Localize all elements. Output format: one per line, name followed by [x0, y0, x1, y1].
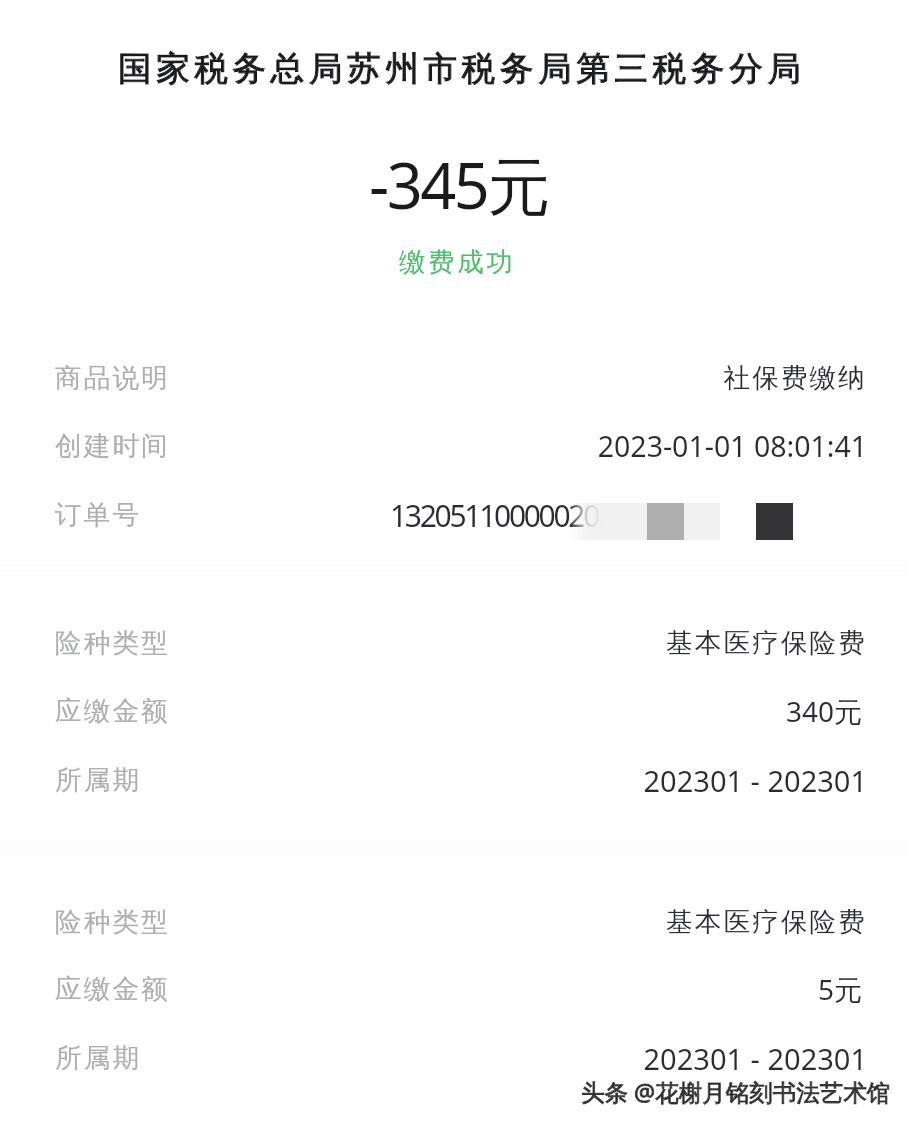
button[interactable]: 险种类型	[0, 893, 908, 951]
staticText: 132051100000203456	[390, 495, 658, 536]
button[interactable]: 所属期	[0, 751, 908, 809]
staticText: 基本医疗保险费	[666, 905, 867, 939]
staticText: 340元	[785, 692, 862, 730]
staticText: 202301 - 202301	[643, 1039, 867, 1078]
staticText: 头条 @花榭月铭刻书法艺术馆	[581, 1076, 891, 1108]
staticText: 商品说明	[55, 361, 170, 395]
staticText: 基本医疗保险费	[666, 626, 867, 660]
button[interactable]: 险种类型	[0, 614, 908, 672]
staticText: 2023-01-01 08:01:41	[597, 427, 867, 466]
staticText: 所属期	[55, 763, 142, 797]
button[interactable]: 订单号	[0, 486, 908, 544]
staticText: 订单号	[55, 498, 142, 532]
staticText: 所属期	[55, 1041, 142, 1075]
staticText: 应缴金额	[55, 694, 170, 728]
staticText: 202301 - 202301	[643, 761, 867, 800]
staticText: 缴费成功	[399, 245, 516, 278]
staticText: -345元	[369, 142, 548, 228]
staticText: 创建时间	[55, 429, 170, 463]
staticText: 社保费缴纳	[723, 361, 867, 395]
staticText: 国家税务总局苏州市税务局第三税务分局	[118, 48, 806, 90]
staticText: 国家税务总局苏州市税务局第三税务分局	[118, 48, 806, 90]
button[interactable]: 创建时间	[0, 417, 908, 475]
staticText: 5元	[817, 970, 862, 1008]
staticText: 头条 @花榭月铭刻书法艺术馆	[581, 1076, 891, 1108]
button[interactable]: 所属期	[0, 1029, 908, 1087]
button[interactable]: 应缴金额	[0, 682, 908, 740]
button[interactable]: 应缴金额	[0, 960, 908, 1018]
staticText: 险种类型	[55, 626, 170, 660]
staticText: 应缴金额	[55, 972, 170, 1006]
button[interactable]: 商品说明	[0, 349, 908, 407]
staticText: 险种类型	[55, 905, 170, 939]
